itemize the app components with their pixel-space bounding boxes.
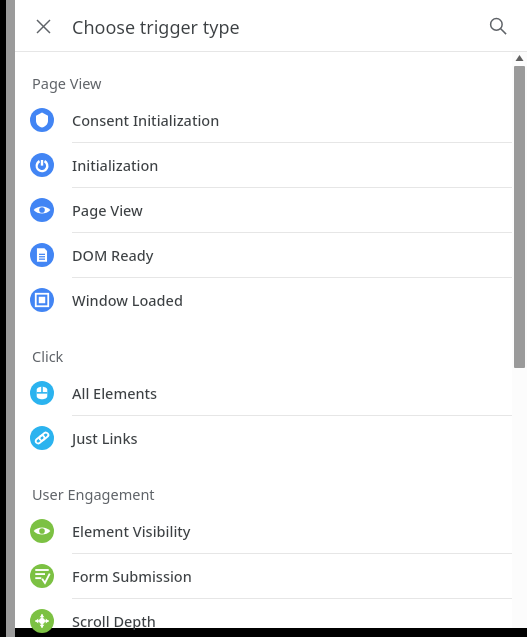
staticText: DOM Ready (72, 245, 154, 265)
staticText: Choose trigger type (72, 15, 240, 40)
staticText: Page View (72, 200, 143, 220)
staticText: User Engagement (32, 484, 155, 504)
staticText: Window Loaded (72, 290, 183, 310)
button[interactable]: Close (27, 10, 59, 42)
staticText: All Elements (72, 383, 158, 403)
button[interactable]: Consent Initialization (15, 97, 527, 142)
staticText: Consent Initialization (72, 110, 220, 130)
staticText: Just Links (72, 428, 138, 448)
button[interactable]: Form Submission (15, 553, 527, 598)
button[interactable]: Just Links (15, 415, 527, 460)
button[interactable]: All Elements (15, 370, 527, 415)
staticText: Page View (32, 73, 102, 93)
button[interactable]: Initialization (15, 142, 527, 187)
staticText: Element Visibility (72, 521, 191, 541)
button[interactable]: Scroll Depth (15, 598, 527, 637)
button[interactable]: DOM Ready (15, 232, 527, 277)
button[interactable]: Element Visibility (15, 508, 527, 553)
staticText: Form Submission (72, 566, 192, 586)
button[interactable]: Page View (15, 187, 527, 232)
staticText: Scroll Depth (72, 611, 156, 631)
button[interactable]: Search (482, 10, 514, 42)
button[interactable]: Window Loaded (15, 277, 527, 322)
staticText: Initialization (72, 155, 159, 175)
staticText: Click (32, 346, 64, 366)
